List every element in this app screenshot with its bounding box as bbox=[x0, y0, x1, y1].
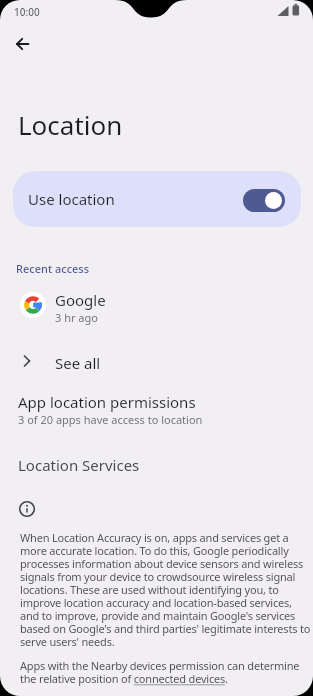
staticText: 10:00 bbox=[14, 5, 40, 19]
button[interactable]: App location permissions bbox=[0, 392, 313, 430]
button[interactable]: Google bbox=[0, 288, 313, 324]
staticText: See all bbox=[55, 353, 101, 373]
button[interactable] bbox=[10, 32, 34, 56]
button[interactable]: See all bbox=[0, 344, 313, 378]
staticText: Recent access bbox=[16, 261, 90, 276]
staticText: 3 hr ago bbox=[55, 310, 98, 325]
staticText: 3 of 20 apps have access to location bbox=[18, 412, 203, 427]
staticText: When Location Accuracy is on, apps and s… bbox=[20, 530, 311, 650]
staticText: Location Services bbox=[18, 455, 140, 475]
button[interactable]: Apps with the Nearby devices permission … bbox=[20, 658, 300, 687]
staticText: Location bbox=[18, 107, 123, 142]
staticText: Google bbox=[55, 290, 106, 310]
staticText: App location permissions bbox=[18, 392, 196, 412]
button[interactable]: Use location bbox=[13, 171, 301, 227]
staticText: Use location bbox=[28, 189, 115, 209]
button[interactable]: Location Services bbox=[0, 452, 313, 480]
